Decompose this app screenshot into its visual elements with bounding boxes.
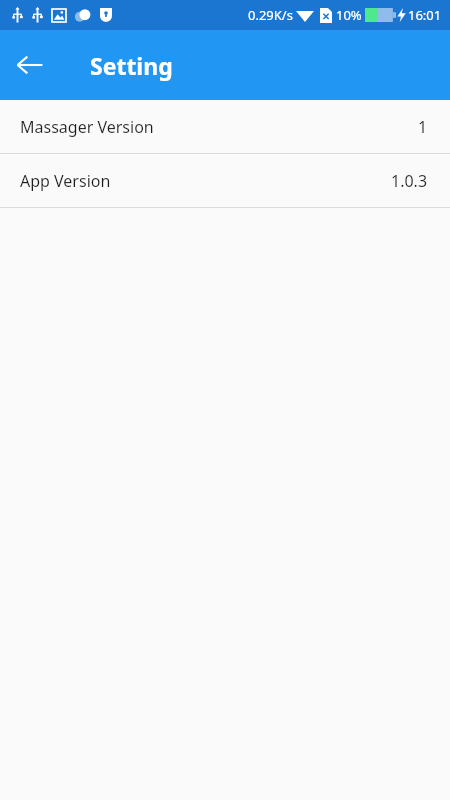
staticText: Massager Version	[20, 116, 154, 138]
staticText: 1.0.3	[391, 170, 428, 192]
staticText: Setting	[90, 50, 173, 81]
staticText: 0.29K/s	[248, 6, 293, 24]
button[interactable]: Back	[0, 36, 58, 94]
staticText: 1	[418, 116, 428, 138]
staticText: 10%	[336, 6, 362, 24]
button[interactable]: Massager Version	[0, 100, 450, 153]
staticText: 16:01	[408, 6, 442, 24]
button[interactable]: App Version	[0, 154, 450, 207]
staticText: App Version	[20, 170, 111, 192]
